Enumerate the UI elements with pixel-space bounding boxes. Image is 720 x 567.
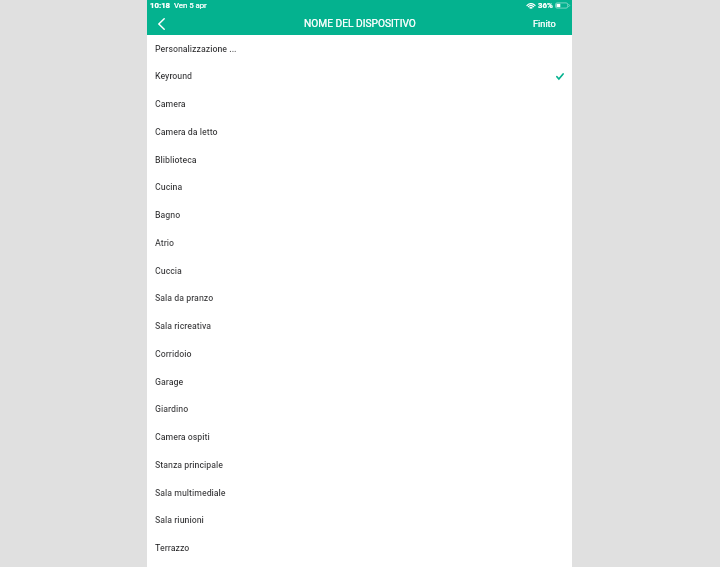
button[interactable]: Bliblioteca: [147, 146, 572, 174]
staticText: Camera da letto: [155, 127, 218, 137]
button[interactable]: Giardino: [147, 395, 572, 423]
staticText: 36%: [538, 1, 553, 10]
staticText: Sala ricreativa: [155, 321, 211, 331]
button[interactable]: Sala da pranzo: [147, 284, 572, 312]
button[interactable]: Keyround: [147, 62, 572, 90]
staticText: Stanza principale: [155, 460, 224, 470]
staticText: Cuccia: [155, 266, 182, 276]
staticText: Ven 5 apr: [174, 1, 207, 10]
button[interactable]: Personalizzazione ...: [147, 35, 572, 63]
button[interactable]: Sala multimediale: [147, 479, 572, 507]
button[interactable]: Atrio: [147, 229, 572, 257]
staticText: Finito: [533, 18, 556, 29]
staticText: Bagno: [155, 210, 181, 220]
button[interactable]: Bagno: [147, 201, 572, 229]
staticText: Atrio: [155, 238, 175, 248]
staticText: Cucina: [155, 182, 183, 192]
staticText: Sala da pranzo: [155, 293, 214, 303]
button[interactable]: Cuccia: [147, 257, 572, 285]
button[interactable]: Back: [147, 12, 176, 35]
staticText: Corridoio: [155, 349, 192, 359]
button[interactable]: Sala ricreativa: [147, 312, 572, 340]
staticText: NOME DEL DISPOSITIVO: [304, 18, 416, 30]
staticText: Keyround: [155, 71, 193, 81]
button[interactable]: Garage: [147, 368, 572, 396]
staticText: Personalizzazione ...: [155, 44, 237, 54]
button[interactable]: Camera ospiti: [147, 423, 572, 451]
staticText: Bliblioteca: [155, 155, 197, 165]
staticText: Camera: [155, 99, 186, 109]
button[interactable]: Cucina: [147, 173, 572, 201]
button[interactable]: Camera: [147, 90, 572, 118]
staticText: Sala multimediale: [155, 488, 226, 498]
button[interactable]: Finito: [533, 12, 572, 35]
staticText: Sala riunioni: [155, 515, 204, 525]
staticText: Giardino: [155, 404, 189, 414]
button[interactable]: Camera da letto: [147, 118, 572, 146]
staticText: Terrazzo: [155, 543, 190, 553]
button[interactable]: Sala riunioni: [147, 506, 572, 534]
staticText: Camera ospiti: [155, 432, 210, 442]
button[interactable]: Corridoio: [147, 340, 572, 368]
button[interactable]: Terrazzo: [147, 534, 572, 562]
button[interactable]: Stanza principale: [147, 451, 572, 479]
staticText: 10:18: [150, 1, 171, 10]
staticText: Garage: [155, 377, 184, 387]
